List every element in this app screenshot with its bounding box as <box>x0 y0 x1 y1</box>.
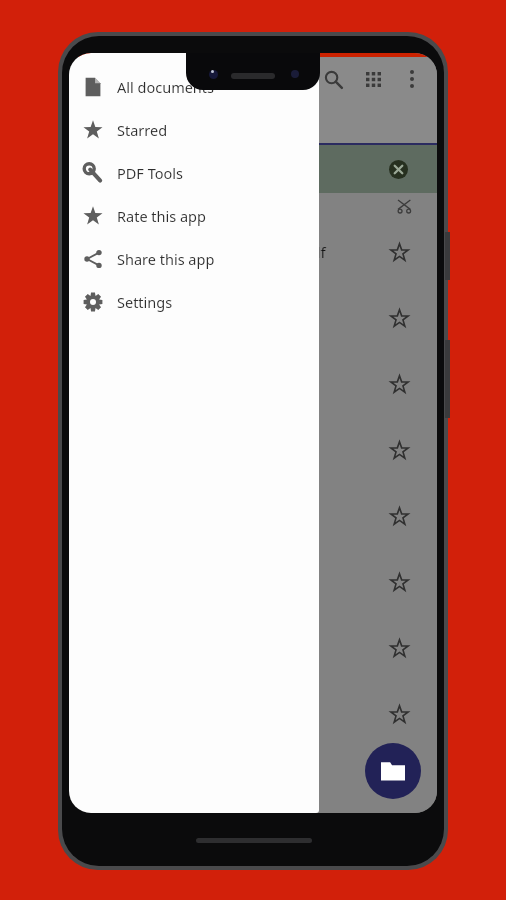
staticText: more <box>81 158 121 180</box>
staticText: PDF Tools <box>117 163 183 183</box>
button[interactable]: Star <box>381 630 417 666</box>
button[interactable]: Grid view <box>353 59 393 99</box>
button[interactable]: more <box>69 145 437 193</box>
button[interactable]: Star <box>381 564 417 600</box>
button[interactable]: Star <box>381 762 417 798</box>
button[interactable]: Star <box>381 432 417 468</box>
staticText: e2c9f1a0-94fb-4d7c-b3a1-694e.pdf <box>81 242 326 262</box>
button[interactable]: statement-0021.pdf <box>69 417 437 483</box>
button[interactable]: More options <box>393 60 431 98</box>
button[interactable]: CHEM-MIC.pdf <box>69 681 437 747</box>
button[interactable]: document-2024-07197.pdf <box>69 351 437 417</box>
staticText: Settings <box>117 292 173 312</box>
staticText: Starred <box>117 120 168 140</box>
button[interactable]: archive.pdf <box>69 747 437 813</box>
staticText: Rate this app <box>117 206 206 226</box>
staticText: All documents <box>117 77 215 97</box>
button[interactable]: New folder <box>365 743 421 799</box>
button[interactable]: Star <box>381 366 417 402</box>
button[interactable]: report-final.pdf <box>69 483 437 549</box>
button[interactable]: Search <box>313 59 353 99</box>
staticText: Share this app <box>117 249 215 269</box>
button[interactable]: notes-2024-10-21.pdf <box>69 549 437 615</box>
button[interactable]: Star <box>381 234 417 270</box>
button[interactable]: Rate this app <box>69 194 319 237</box>
button[interactable]: Share this app <box>69 237 319 280</box>
button[interactable]: Settings <box>69 280 319 323</box>
staticText: invoice-scan-output.pdf <box>81 308 248 328</box>
button[interactable]: Star <box>381 498 417 534</box>
button[interactable]: All documents <box>69 65 319 108</box>
button[interactable]: Star <box>381 300 417 336</box>
button[interactable]: Star <box>69 615 437 681</box>
button[interactable]: PDF Tools <box>69 151 319 194</box>
button[interactable]: invoice-scan-output.pdf <box>69 285 437 351</box>
button[interactable]: Clear <box>383 154 413 184</box>
button[interactable]: e2c9f1a0-94fb-4d7c-b3a1-694e.pdf <box>69 219 437 285</box>
button[interactable]: Starred <box>69 108 319 151</box>
button[interactable]: Star <box>381 696 417 732</box>
